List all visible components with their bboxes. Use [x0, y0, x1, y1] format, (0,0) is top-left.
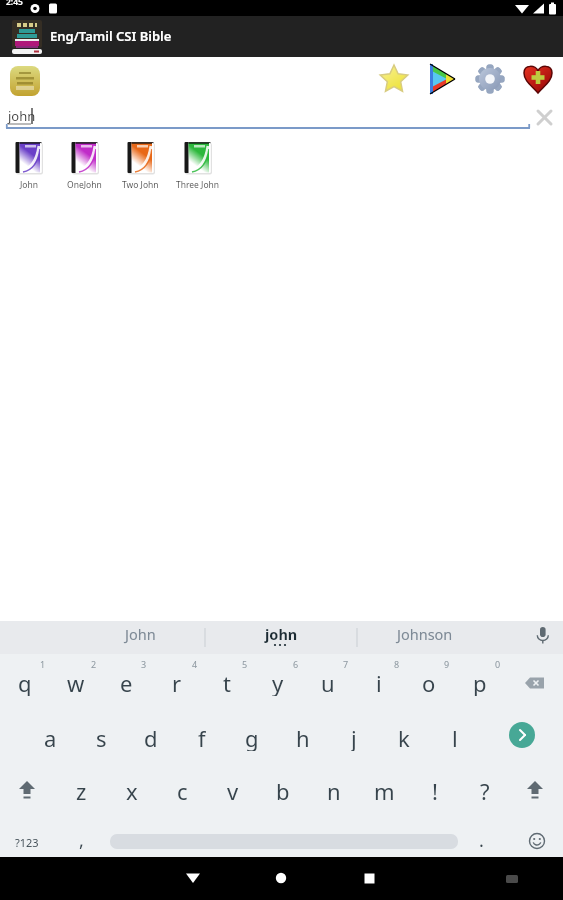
button[interactable]	[10, 66, 40, 96]
staticText: ?	[480, 776, 490, 804]
staticText: g	[245, 723, 259, 751]
button[interactable]	[474, 63, 506, 95]
button[interactable]	[261, 858, 301, 898]
button[interactable]: !	[375, 776, 495, 804]
staticText: John	[20, 179, 38, 191]
staticText: z	[76, 776, 87, 804]
button[interactable]: v	[173, 776, 293, 804]
button[interactable]: John	[80, 620, 200, 648]
button[interactable]	[15, 141, 55, 189]
button[interactable]: o	[369, 668, 489, 696]
button[interactable]: s	[41, 723, 161, 751]
button[interactable]: i	[319, 668, 439, 696]
staticText: b	[276, 776, 290, 804]
button[interactable]	[71, 141, 111, 189]
button[interactable]: z	[21, 776, 141, 804]
staticText: p	[473, 668, 487, 696]
button[interactable]: u	[268, 668, 388, 696]
staticText: h	[296, 723, 310, 751]
button[interactable]	[184, 141, 224, 189]
button[interactable]: y	[218, 668, 338, 696]
staticText: 3	[141, 658, 147, 670]
button[interactable]: ?	[425, 776, 545, 804]
button[interactable]	[349, 858, 389, 898]
button[interactable]: q	[0, 668, 85, 696]
button[interactable]	[522, 63, 554, 95]
staticText: 7	[343, 658, 349, 670]
staticText: ?123	[15, 835, 39, 850]
staticText: y	[272, 668, 284, 696]
staticText: d	[144, 723, 158, 751]
button[interactable]: w	[16, 668, 136, 696]
button[interactable]: r	[117, 668, 237, 696]
button[interactable]	[173, 858, 213, 898]
staticText: 1	[40, 658, 46, 670]
button[interactable]	[15, 779, 39, 801]
button[interactable]: d	[91, 723, 211, 751]
button[interactable]	[427, 63, 459, 95]
button[interactable]: p	[420, 668, 540, 696]
staticText: Johnson	[397, 624, 453, 644]
button[interactable]: ,	[21, 826, 141, 854]
button[interactable]: john	[221, 620, 341, 648]
staticText: 2	[91, 658, 97, 670]
staticText: r	[172, 668, 182, 696]
staticText: john	[8, 107, 36, 125]
staticText: i	[376, 668, 382, 696]
staticText: s	[96, 723, 107, 751]
staticText: w	[67, 668, 85, 696]
staticText: c	[177, 776, 188, 804]
staticText: e	[120, 668, 133, 696]
staticText: n	[327, 776, 341, 804]
button[interactable]: n	[274, 776, 394, 804]
button[interactable]	[378, 62, 410, 94]
staticText: v	[227, 776, 239, 804]
button[interactable]: k	[344, 723, 464, 751]
staticText: 2:45	[6, 0, 23, 8]
button[interactable]	[127, 141, 167, 189]
button[interactable]: l	[395, 723, 515, 751]
staticText: x	[126, 776, 138, 804]
staticText: t	[223, 668, 231, 696]
staticText: 8	[394, 658, 400, 670]
button[interactable]: a	[0, 723, 110, 751]
staticText: OneJohn	[67, 179, 102, 191]
button[interactable]	[509, 722, 535, 748]
button[interactable]: t	[167, 668, 287, 696]
staticText: !	[432, 776, 438, 804]
staticText: 5	[242, 658, 248, 670]
button[interactable]	[523, 779, 547, 801]
staticText: k	[398, 723, 410, 751]
staticText: j	[351, 723, 357, 751]
button[interactable]: ?123	[0, 828, 87, 856]
button[interactable]: .	[421, 826, 541, 854]
button[interactable]: e	[66, 668, 186, 696]
button[interactable]: g	[192, 723, 312, 751]
staticText: John	[125, 624, 156, 644]
staticText: ,	[79, 828, 84, 853]
button[interactable]	[494, 861, 530, 897]
staticText: l	[452, 723, 458, 751]
button[interactable]: x	[72, 776, 192, 804]
button[interactable]: c	[122, 776, 242, 804]
button[interactable]: Eng/Tamil CSI Bible	[0, 16, 563, 57]
button[interactable]: h	[243, 723, 363, 751]
button[interactable]	[530, 104, 558, 132]
button[interactable]	[523, 676, 549, 694]
button[interactable]: b	[223, 776, 343, 804]
button[interactable]: Johnson	[365, 620, 485, 648]
staticText: Three John	[176, 179, 220, 191]
staticText: 4	[192, 658, 198, 670]
staticText: u	[321, 668, 335, 696]
button[interactable]: f	[142, 723, 262, 751]
staticText: Eng/Tamil CSI Bible	[50, 27, 172, 45]
button[interactable]: m	[324, 776, 444, 804]
button[interactable]: j	[294, 723, 414, 751]
button[interactable]	[528, 832, 546, 850]
staticText: m	[374, 776, 395, 804]
staticText: f	[198, 723, 206, 751]
staticText: q	[18, 668, 32, 696]
staticText: .	[479, 828, 484, 853]
button[interactable]	[528, 621, 563, 654]
